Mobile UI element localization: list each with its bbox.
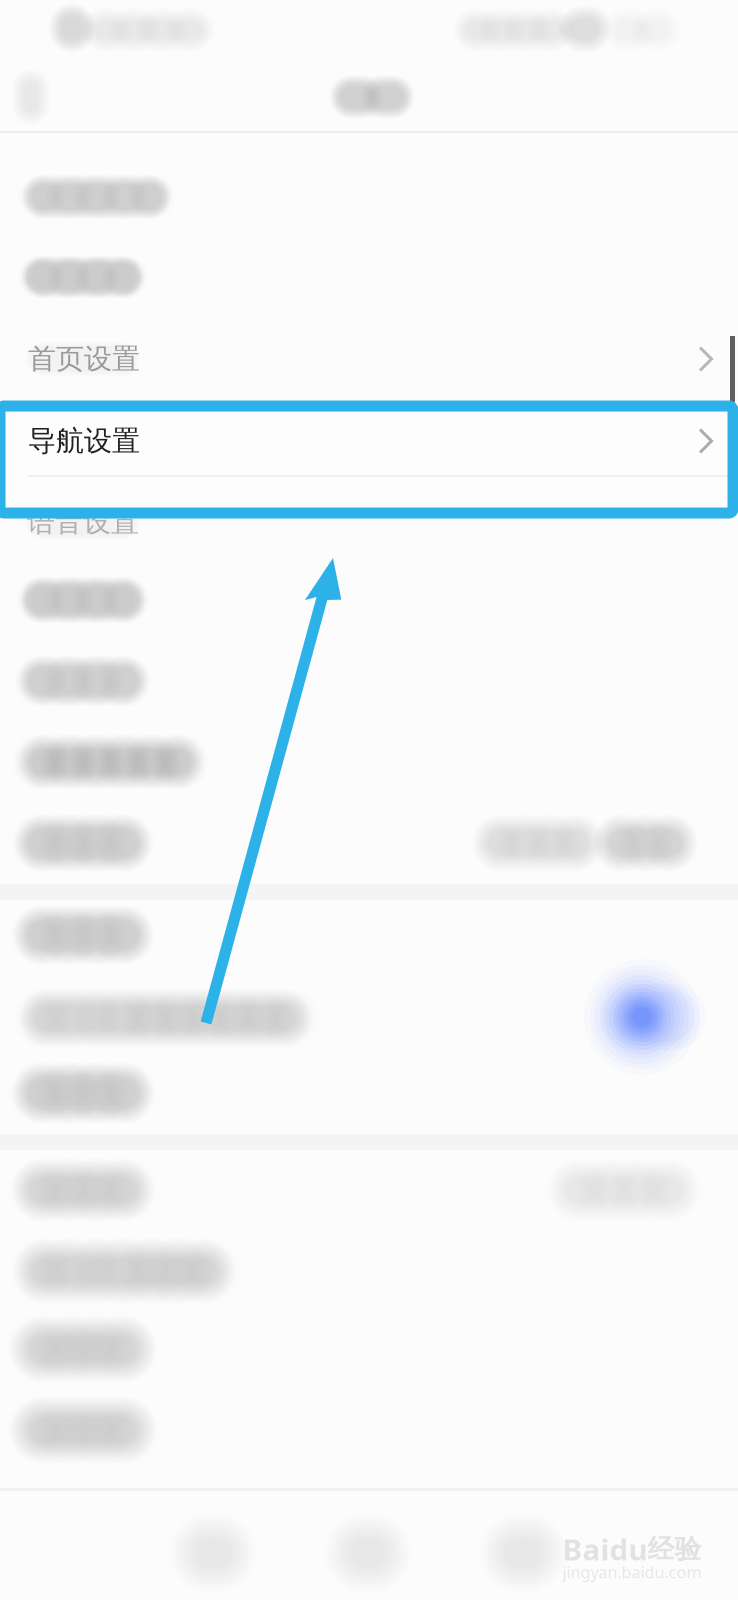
- button[interactable]: Me: [448, 1490, 598, 1600]
- button[interactable]: Routes: [293, 1490, 443, 1600]
- staticText: jingyan.baidu.com: [562, 1561, 701, 1583]
- staticText: 经验: [647, 1533, 701, 1565]
- staticText: 导航设置: [28, 424, 140, 458]
- button[interactable]: Toggle: [567, 957, 717, 1077]
- button[interactable]: 首页设置: [0, 323, 738, 395]
- button[interactable]: 导航设置: [0, 409, 738, 473]
- button[interactable]: Back: [0, 54, 92, 140]
- button[interactable]: Home: [138, 1490, 288, 1600]
- staticText: 语音设置: [27, 505, 139, 539]
- staticText: Baidu: [562, 1529, 647, 1568]
- staticText: 首页设置: [28, 342, 140, 376]
